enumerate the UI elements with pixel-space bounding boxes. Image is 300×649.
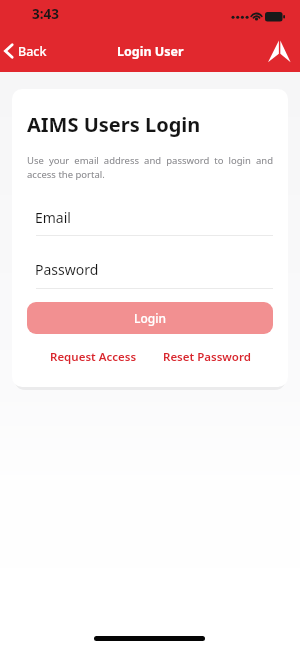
- button[interactable]: Login: [27, 302, 273, 334]
- button[interactable]: Request Access: [50, 349, 137, 365]
- button[interactable]: Email: [35, 208, 71, 227]
- staticText: AIMS Users Login: [27, 111, 201, 138]
- button[interactable]: Reset Password: [163, 349, 251, 365]
- staticText: Back: [18, 43, 47, 60]
- staticText: Login: [134, 310, 166, 326]
- staticText: 3:43: [32, 5, 59, 23]
- staticText: Login User: [117, 43, 184, 60]
- staticText: Use your email address and password to l…: [27, 154, 273, 180]
- button[interactable]: Back: [2, 41, 47, 61]
- button[interactable]: Password: [35, 260, 99, 279]
